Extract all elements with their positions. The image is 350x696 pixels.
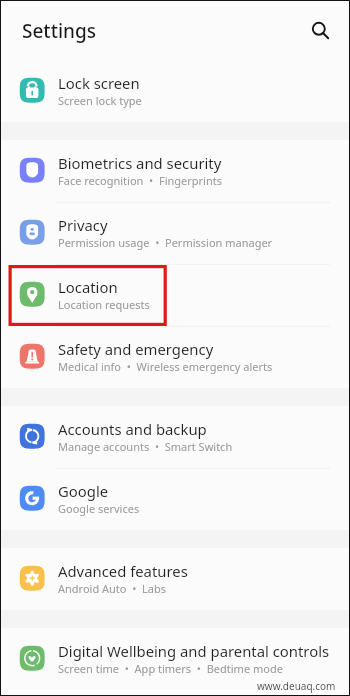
button[interactable]: Advanced features <box>1 548 349 610</box>
staticText: Google services <box>58 501 140 516</box>
button[interactable]: Accounts and backup <box>1 406 349 468</box>
staticText: Location requests <box>58 297 150 312</box>
staticText: Google <box>58 481 109 501</box>
button[interactable]: Google <box>1 468 349 530</box>
button[interactable]: Digital Wellbeing and parental controls <box>1 628 349 690</box>
staticText: www.deuaq.com <box>257 679 336 693</box>
staticText: Medical info • Wireless emergency alerts <box>58 359 273 374</box>
staticText: Android Auto • Labs <box>58 581 167 596</box>
staticText: Manage accounts • Smart Switch <box>58 439 233 454</box>
staticText: Accounts and backup <box>58 419 207 439</box>
button[interactable]: Safety and emergency <box>1 326 349 388</box>
staticText: Digital Wellbeing and parental controls <box>58 641 330 661</box>
button[interactable]: Search <box>301 14 335 48</box>
button[interactable]: Location <box>1 264 349 326</box>
staticText: Advanced features <box>58 561 188 581</box>
button[interactable]: Privacy <box>1 202 349 264</box>
button[interactable]: Biometrics and security <box>1 140 349 202</box>
staticText: Screen time • App timers • Bedtime mode <box>58 661 283 676</box>
staticText: Lock screen <box>58 73 140 93</box>
staticText: Privacy <box>58 215 108 235</box>
staticText: Settings <box>22 18 96 44</box>
staticText: Permission usage • Permission manager <box>58 235 273 250</box>
staticText: Biometrics and security <box>58 153 222 173</box>
staticText: Face recognition • Fingerprints <box>58 173 222 188</box>
staticText: Screen lock type <box>58 93 142 108</box>
button[interactable]: Lock screen <box>1 60 349 122</box>
staticText: Location <box>58 277 118 297</box>
staticText: Safety and emergency <box>58 339 214 359</box>
